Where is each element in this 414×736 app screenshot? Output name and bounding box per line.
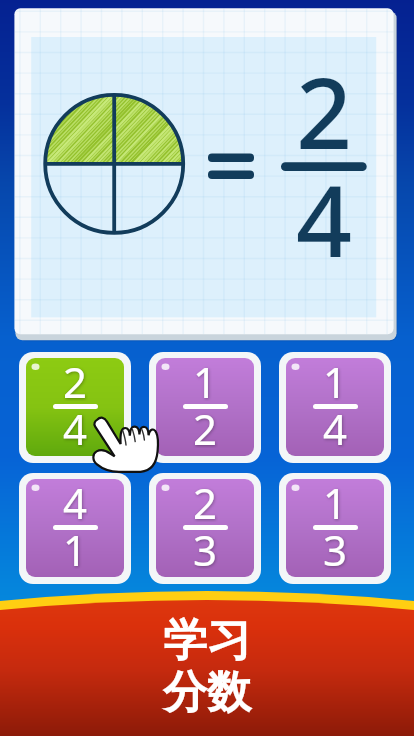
staticText: 2: [193, 400, 218, 448]
button[interactable]: 2: [19, 352, 131, 463]
staticText: 1: [63, 521, 88, 569]
staticText: 4: [323, 400, 348, 448]
staticText: 1: [323, 479, 348, 522]
staticText: 1: [63, 521, 88, 569]
staticText: 3: [323, 521, 348, 569]
staticText: 2: [63, 358, 88, 401]
staticText: 4: [296, 152, 353, 272]
staticText: 学习: [163, 613, 251, 668]
staticText: 4: [323, 400, 348, 448]
staticText: 3: [323, 521, 348, 569]
staticText: 3: [193, 521, 218, 569]
staticText: 4: [63, 400, 88, 448]
staticText: 1: [193, 358, 218, 401]
staticText: 1: [193, 358, 218, 401]
button[interactable]: 4: [19, 473, 131, 584]
staticText: 2: [296, 44, 353, 164]
staticText: 2: [193, 400, 218, 448]
staticText: 1: [323, 358, 348, 401]
staticText: 2: [63, 358, 88, 401]
staticText: 1: [323, 479, 348, 522]
staticText: 分数: [163, 665, 251, 720]
staticText: 3: [193, 521, 218, 569]
staticText: 1: [323, 358, 348, 401]
button[interactable]: 1: [149, 352, 261, 463]
staticText: 4: [63, 479, 88, 522]
staticText: 4: [63, 479, 88, 522]
staticText: 2: [193, 479, 218, 522]
button[interactable]: 1: [279, 473, 391, 584]
button[interactable]: 1: [279, 352, 391, 463]
button[interactable]: 2: [149, 473, 261, 584]
staticText: 4: [63, 400, 88, 448]
staticText: 2: [193, 479, 218, 522]
